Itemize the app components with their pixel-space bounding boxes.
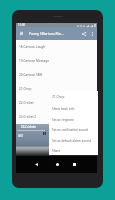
staticText: 23-Cricket 2 — [19, 115, 37, 119]
button[interactable]: Pause — [41, 130, 47, 136]
staticText: Set as default alarm sound — [52, 139, 91, 143]
button[interactable]: More options — [89, 30, 96, 37]
staticText: 24-Crickets — [21, 125, 36, 129]
button[interactable]: Open navigation drawer — [18, 27, 25, 40]
button[interactable]: 21-Chirp — [16, 82, 97, 96]
button[interactable]: Back — [32, 160, 40, 168]
button[interactable]: Share — [80, 30, 88, 38]
button[interactable]: Home — [53, 160, 61, 168]
button[interactable]: Recent apps — [70, 160, 78, 168]
button[interactable]: 23-Cricket 2 — [16, 110, 97, 124]
staticText: Set as ringtone — [52, 118, 74, 122]
button[interactable]: 18-Cartoon Laugh — [16, 40, 97, 54]
button[interactable]: Share — [49, 146, 98, 156]
button[interactable]: 22-Cricket — [16, 96, 97, 110]
staticText: 20-Cartoon SMS — [19, 73, 43, 77]
staticText: Funny Hilarious Rin... — [29, 31, 64, 36]
staticText: 0:01 — [18, 134, 24, 138]
staticText: 22-Cricket — [19, 101, 34, 105]
staticText: 21-Chirp — [52, 95, 65, 99]
staticText: 18-Cartoon Laugh — [19, 45, 46, 49]
staticText: 21-Chirp — [19, 87, 32, 91]
button[interactable]: 20-Cartoon SMS — [16, 68, 97, 82]
staticText: Share — [52, 149, 61, 153]
button[interactable]: Set as default alarm sound — [49, 136, 98, 146]
button[interactable]: Set as notification sound — [49, 125, 98, 135]
button[interactable]: Set as ringtone — [49, 115, 98, 125]
staticText: Set as notification sound — [52, 128, 88, 132]
staticText: 19-Cartoon Message — [19, 59, 49, 63]
button[interactable]: 19-Cartoon Message — [16, 54, 97, 68]
button[interactable]: Show track info — [49, 104, 98, 114]
staticText: 13:56 — [18, 23, 26, 27]
staticText: Show track info — [52, 107, 75, 111]
